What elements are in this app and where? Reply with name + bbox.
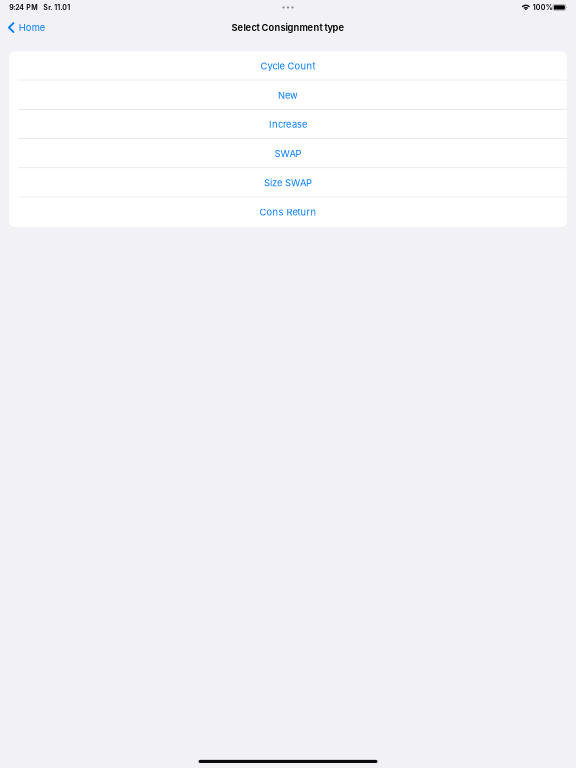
button[interactable]: SWAP [9, 139, 567, 168]
staticText: SWAP [274, 148, 301, 159]
button[interactable]: Size SWAP [9, 168, 567, 197]
staticText: 9:24 PM Śr. 11.01 [9, 3, 70, 12]
staticText: New [278, 90, 298, 101]
button[interactable]: New [9, 81, 567, 110]
staticText: Home [19, 22, 45, 33]
staticText: Select Consignment type [231, 22, 344, 33]
button[interactable]: Increase [9, 110, 567, 139]
staticText: Cons Return [259, 206, 316, 218]
staticText: Increase [269, 119, 307, 130]
staticText: 100% [533, 3, 553, 12]
staticText: Cycle Count [260, 60, 315, 72]
staticText: Size SWAP [264, 177, 312, 189]
button[interactable]: Cons Return [9, 198, 567, 227]
button[interactable]: Cycle Count [9, 51, 567, 81]
button[interactable]: Back to Home [0, 13, 52, 42]
